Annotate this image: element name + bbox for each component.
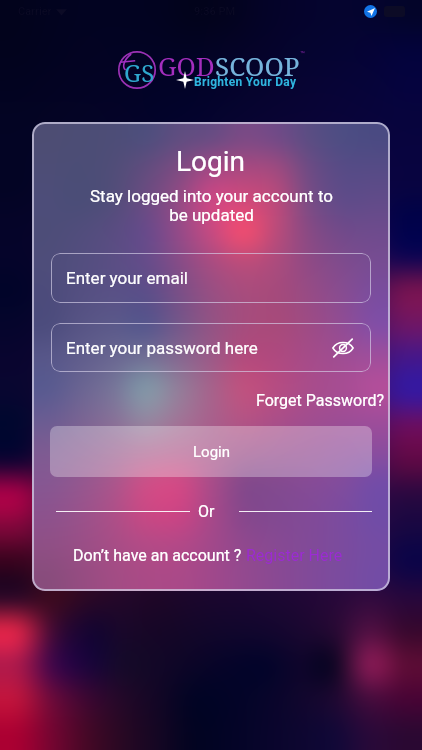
staticText: GOD [158,48,215,83]
staticText: Or [198,502,215,521]
staticText: Brighten Your Day [194,75,297,89]
staticText: Enter your email [66,268,189,288]
staticText: Don’t have an account ? [73,546,242,565]
staticText: Register Here [242,546,343,565]
button[interactable]: Enter your email [51,253,371,303]
staticText: Stay logged into your account to be upda… [90,186,333,225]
button[interactable]: Show password [330,335,356,361]
staticText: Login [176,145,246,178]
staticText: GS [124,56,155,89]
button[interactable]: Enter your password here [51,323,371,372]
button[interactable]: Forget Password? [256,391,384,410]
staticText: ™ [300,50,306,59]
staticText: Forget Password? [256,391,384,410]
staticText: Enter your password here [66,338,258,358]
button[interactable]: Register Here [242,546,343,565]
staticText: Login [193,443,230,461]
button[interactable]: Login [50,426,372,477]
staticText: SCOOP [215,48,300,83]
